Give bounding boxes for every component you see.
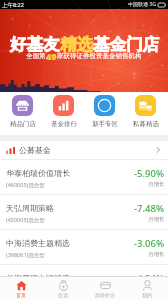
staticText: 精选 (60, 34, 93, 55)
staticText: 我的 (142, 292, 152, 298)
staticText: 月增长 (148, 286, 165, 293)
staticText: 基金门店 (93, 34, 159, 55)
staticText: 新手专区 (92, 120, 118, 128)
staticText: -3.06% (134, 237, 165, 250)
staticText: -5.90% (134, 167, 165, 180)
staticText: 全国第 (26, 52, 46, 60)
button[interactable]: 华泰柏瑞价值增长 (0, 160, 168, 194)
staticText: (399001)混合型 (6, 286, 45, 294)
button[interactable]: Counter (84, 279, 126, 299)
staticText: 公募基金 (19, 145, 51, 155)
staticText: 49 (46, 50, 57, 62)
staticText: -4.24% (134, 272, 165, 285)
staticText: 华泰柏瑞价值增长 (6, 168, 70, 178)
staticText: 天弘周期策略 (6, 203, 54, 213)
staticText: 精品门店 (10, 120, 36, 128)
button[interactable]: 前海开源中证健康 (0, 265, 168, 299)
staticText: 首页 (16, 292, 26, 298)
staticText: (460005)混合型 (6, 181, 45, 189)
button[interactable]: 新手专区 (84, 92, 125, 130)
staticText: 月增长 (148, 181, 165, 188)
button[interactable]: Profile (126, 279, 168, 299)
staticText: 中国联通 3G (128, 1, 156, 8)
staticText: 上午8:22 (2, 1, 24, 9)
staticText: 中海消费主题精选 (6, 238, 70, 248)
staticText: 好基友 (10, 34, 60, 55)
button[interactable]: 中海消费主题精选 (0, 230, 168, 264)
button[interactable]: Home (0, 279, 42, 299)
staticText: 月增长 (148, 251, 165, 258)
staticText: (398061)混合型 (6, 251, 45, 259)
button[interactable]: 私募精选 (125, 92, 166, 130)
staticText: 前海开源中证健康 (6, 273, 70, 283)
button[interactable]: 精品门店 (2, 92, 43, 130)
button[interactable]: Watchlist (42, 279, 84, 299)
staticText: 基金排行 (51, 120, 77, 128)
staticText: 超级柜台 (95, 292, 115, 298)
staticText: 家获得证券投资基金销售机构 (57, 52, 142, 60)
staticText: 自选 (58, 292, 68, 298)
staticText: 私募精选 (133, 120, 159, 128)
staticText: (420005)混合型 (6, 216, 45, 224)
button[interactable]: 天弘周期策略 (0, 195, 168, 229)
button[interactable]: 基金排行 (43, 92, 84, 130)
staticText: 月增长 (148, 216, 165, 223)
staticText: -7.48% (134, 202, 165, 215)
